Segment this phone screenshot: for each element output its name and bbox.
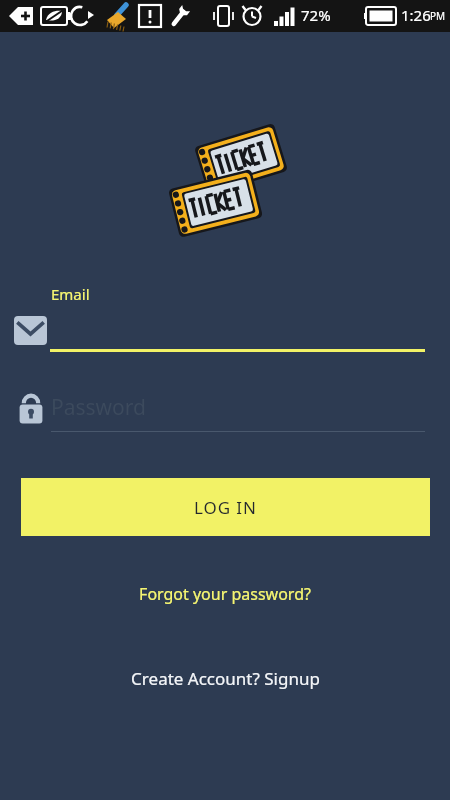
staticText: Password (51, 393, 146, 422)
button[interactable]: Email (0, 308, 450, 352)
button[interactable]: Password (0, 388, 450, 432)
button[interactable]: Forgot your password? (0, 578, 450, 609)
other: Email (14, 316, 47, 345)
staticText: 72% (301, 5, 331, 25)
button[interactable]: Create Account? Signup (0, 663, 450, 694)
staticText: PM (430, 9, 446, 23)
staticText: 1:26 (401, 5, 431, 25)
staticText: Email (51, 284, 90, 304)
button[interactable]: LOG IN (21, 478, 430, 536)
staticText: Create Account? Signup (131, 667, 320, 690)
staticText: Forgot your password? (139, 583, 311, 605)
other: Password (16, 393, 46, 427)
staticText: LOG IN (194, 496, 257, 519)
